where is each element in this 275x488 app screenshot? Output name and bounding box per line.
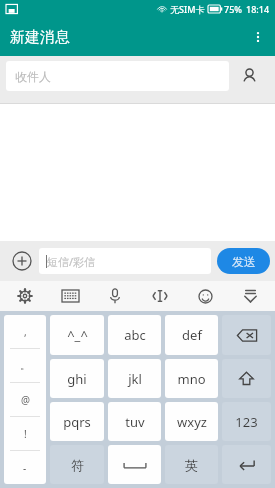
button[interactable]: @ xyxy=(4,383,46,416)
button[interactable]: tuv xyxy=(108,402,161,441)
button[interactable]: 符 xyxy=(50,445,104,484)
button[interactable]: 收件人 xyxy=(6,61,229,91)
button[interactable]: ! xyxy=(4,417,46,450)
staticText: 75% xyxy=(224,3,242,15)
button[interactable]: Add attachment xyxy=(5,244,39,278)
button[interactable]: def xyxy=(165,315,218,355)
button[interactable]: Voice input xyxy=(95,281,135,311)
button[interactable]: Enter xyxy=(222,445,271,484)
button[interactable]: jkl xyxy=(108,359,161,398)
staticText: wxyz xyxy=(177,413,207,431)
button[interactable]: ^_^ xyxy=(50,315,104,355)
button[interactable]: Keyboard xyxy=(50,281,90,311)
button[interactable]: Settings xyxy=(5,281,45,311)
button[interactable]: Emoji xyxy=(185,281,225,311)
button[interactable]: - xyxy=(4,451,46,484)
button[interactable]: , xyxy=(4,315,46,348)
staticText: 123 xyxy=(235,413,258,431)
staticText: jkl xyxy=(128,370,142,388)
staticText: tuv xyxy=(125,413,145,431)
button[interactable]: wxyz xyxy=(165,402,218,441)
button[interactable]: 英 xyxy=(165,445,218,484)
staticText: pqrs xyxy=(63,413,91,431)
button[interactable]: More options xyxy=(241,20,275,54)
button[interactable]: Space xyxy=(108,445,161,484)
button[interactable]: mno xyxy=(165,359,218,398)
staticText: 英 xyxy=(185,457,198,473)
button[interactable]: 123 xyxy=(222,402,271,441)
staticText: 。 xyxy=(20,359,30,372)
staticText: abc xyxy=(124,326,146,344)
staticText: 收件人 xyxy=(15,69,51,84)
button[interactable]: 。 xyxy=(4,349,46,382)
button[interactable]: Hide keyboard xyxy=(230,281,270,311)
button[interactable]: Backspace xyxy=(222,315,271,355)
staticText: ghi xyxy=(67,370,87,388)
button[interactable]: Contacts xyxy=(229,56,269,96)
staticText: 新建消息 xyxy=(10,28,70,47)
staticText: 发送 xyxy=(232,254,256,269)
staticText: def xyxy=(182,326,202,344)
button[interactable]: 发送 xyxy=(217,248,270,274)
staticText: , xyxy=(24,325,27,339)
staticText: ! xyxy=(24,427,27,441)
button[interactable]: abc xyxy=(108,315,161,355)
staticText: ^_^ xyxy=(67,326,88,344)
staticText: mno xyxy=(177,370,206,388)
button[interactable]: ghi xyxy=(50,359,104,398)
button[interactable]: Shift xyxy=(222,359,271,398)
staticText: - xyxy=(23,461,27,475)
button[interactable]: pqrs xyxy=(50,402,104,441)
staticText: 符 xyxy=(71,457,84,473)
button[interactable]: Move cursor xyxy=(140,281,180,311)
button[interactable]: 短信/彩信 xyxy=(39,248,211,274)
staticText: 18:14 xyxy=(246,3,270,15)
staticText: 短信/彩信 xyxy=(47,254,96,269)
staticText: 无SIM卡 xyxy=(170,3,205,15)
staticText: @ xyxy=(21,393,30,407)
